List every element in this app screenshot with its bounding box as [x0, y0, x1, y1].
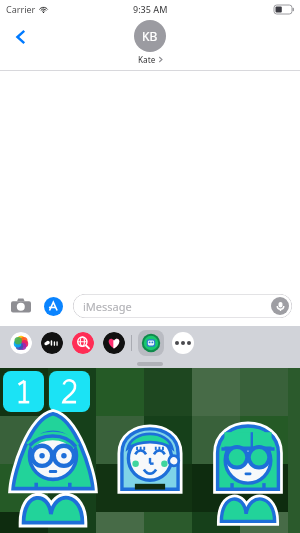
- staticText: Kate: [138, 54, 156, 65]
- staticText: iMessage: [83, 299, 132, 314]
- button[interactable]: Sticker 3: [204, 413, 290, 499]
- button[interactable]: Camera: [8, 293, 34, 319]
- staticText: Carrier: [6, 3, 36, 15]
- button[interactable]: More apps: [172, 332, 194, 354]
- button[interactable]: App Store: [40, 293, 66, 319]
- button[interactable]: Sticker 1: [11, 413, 97, 499]
- button[interactable]: Digital Touch: [103, 332, 125, 354]
- button[interactable]: iMessage: [73, 294, 292, 318]
- button[interactable]: Back: [4, 20, 38, 54]
- button[interactable]: Photos: [10, 332, 32, 354]
- button[interactable]: Sticker 2: [107, 413, 193, 499]
- staticText: KB: [142, 28, 158, 44]
- button[interactable]: Sticker pack: [138, 330, 164, 356]
- staticText: 9:35 AM: [133, 3, 168, 15]
- button[interactable]: Image search: [72, 332, 94, 354]
- button[interactable]: KB: [134, 20, 166, 65]
- button[interactable]: Dictate: [271, 297, 289, 315]
- button[interactable]: Apple Pay: [41, 332, 63, 354]
